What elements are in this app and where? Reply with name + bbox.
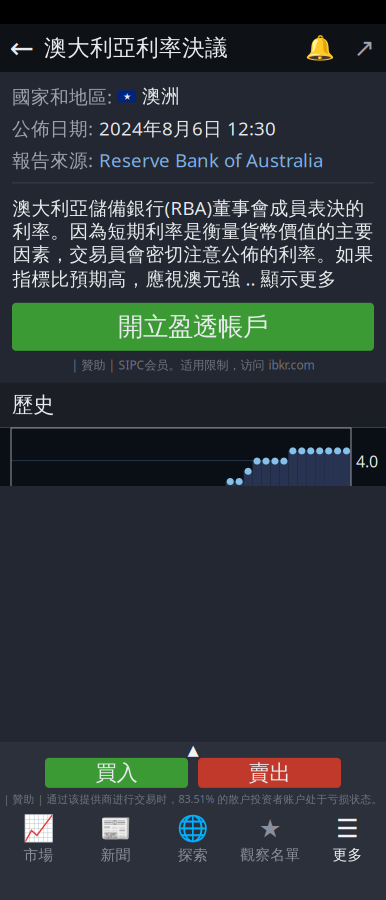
staticText: 市場 (24, 846, 54, 864)
staticText: 更多 (332, 846, 362, 864)
staticText: 國家和地區: (12, 84, 112, 109)
staticText: 2024年8月6日 (8月) (12, 734, 143, 780)
staticText: 3.2 (356, 484, 378, 505)
staticText: 歷史 (12, 392, 54, 418)
staticText: 4.35% (296, 745, 345, 768)
staticText: 📈 (23, 814, 55, 843)
staticText: ★ (259, 814, 282, 843)
staticText: ▲ (187, 741, 198, 758)
button[interactable]: 提醒 (298, 24, 342, 72)
button[interactable]: 分享 (342, 24, 386, 72)
staticText: 澳大利亞利率決議 (44, 34, 228, 62)
staticText: 探索 (178, 846, 208, 864)
staticText: | 贊助 | 通过该提供商进行交易时，83.51% 的散户投资者账户处于亏损状态… (3, 792, 382, 806)
staticText: 買入 (95, 760, 137, 786)
staticText: Reserve Bank of Australia (99, 148, 323, 172)
staticText: 觀察名單 (240, 846, 300, 864)
staticText: 2024年8月6日 12:30 (99, 116, 276, 141)
staticText: 開立盈透帳戶 (118, 311, 268, 342)
button[interactable]: 📰 (77, 808, 154, 870)
button[interactable]: ★ (232, 808, 309, 870)
staticText: 澳大利亞儲備銀行(RBA)董事會成員表決的利率。因為短期利率是衡量貨幣價值的主要… (12, 195, 373, 291)
staticText: ← (9, 31, 34, 65)
staticText: 🌐 (177, 814, 209, 843)
staticText: 公佈日期: (12, 116, 93, 141)
button[interactable]: 🌐 (154, 808, 232, 870)
staticText: 賣出 (248, 760, 290, 786)
staticText: 4.35% (158, 745, 207, 768)
staticText: ☰ (336, 814, 359, 843)
button[interactable]: 展開 (163, 742, 223, 758)
button[interactable]: 📈 (0, 808, 77, 870)
staticText: 4.35% (220, 745, 269, 768)
staticText: 澳洲 (142, 85, 180, 108)
staticText: ↗ (353, 34, 374, 62)
staticText: ★ (123, 91, 131, 102)
button[interactable]: 開立盈透帳戶 (12, 303, 374, 351)
button[interactable]: 買入 (45, 758, 188, 788)
button[interactable]: ☰ (309, 808, 386, 870)
staticText: 📰 (100, 814, 132, 843)
staticText: 報告來源: (12, 148, 93, 172)
button[interactable]: 返回 (0, 24, 44, 72)
button[interactable]: 賣出 (198, 758, 341, 788)
staticText: 🔔 (305, 34, 335, 62)
staticText: 新聞 (101, 846, 131, 864)
staticText: 4.0 (356, 451, 378, 472)
staticText: | 贊助 | SIPC会员。适用限制，访问 ibkr.com (71, 357, 314, 373)
